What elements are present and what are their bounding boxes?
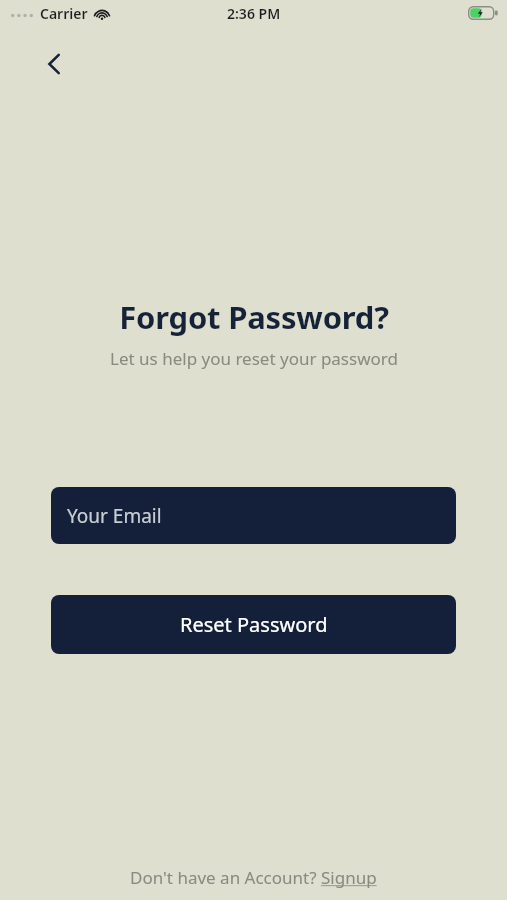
staticText: Your Email: [67, 503, 162, 529]
button[interactable]: Don't have an Account? Signup: [124, 864, 383, 891]
button[interactable]: Back: [34, 44, 74, 84]
staticText: 2:36 PM: [227, 4, 281, 23]
staticText: Carrier: [40, 4, 88, 23]
button[interactable]: Your Email: [51, 487, 456, 544]
staticText: Let us help you reset your password: [110, 347, 398, 370]
button[interactable]: Reset Password: [51, 595, 456, 654]
staticText: Don't have an Account? Signup: [130, 866, 377, 889]
staticText: Reset Password: [180, 611, 328, 638]
staticText: Forgot Password?: [119, 296, 389, 338]
